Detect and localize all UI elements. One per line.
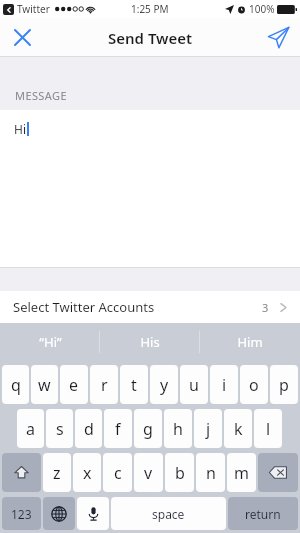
staticText: t <box>131 374 137 396</box>
staticText: r <box>101 374 108 396</box>
staticText: p <box>279 374 289 396</box>
button[interactable]: Dictate <box>77 497 109 530</box>
staticText: l <box>266 418 271 440</box>
staticText: Twitter <box>17 2 50 16</box>
button[interactable]: j <box>194 409 222 448</box>
staticText: f <box>115 418 121 440</box>
staticText: z <box>53 462 61 484</box>
button[interactable]: b <box>165 453 194 492</box>
button[interactable]: Close <box>0 18 44 57</box>
button[interactable]: x <box>73 453 101 492</box>
staticText: b <box>175 462 185 484</box>
button[interactable]: Send <box>256 18 300 57</box>
staticText: space <box>152 506 185 522</box>
staticText: y <box>160 374 169 396</box>
button[interactable]: d <box>75 409 102 448</box>
button[interactable]: w <box>31 365 58 404</box>
staticText: i <box>222 374 227 396</box>
button[interactable]: v <box>134 453 163 492</box>
staticText: return <box>245 506 281 522</box>
button[interactable]: a <box>17 409 44 448</box>
staticText: His <box>140 333 160 351</box>
staticText: q <box>11 374 21 396</box>
staticText: o <box>249 374 259 396</box>
button[interactable]: z <box>43 453 71 492</box>
staticText: w <box>38 374 51 396</box>
staticText: Send Tweet <box>108 28 193 48</box>
button[interactable]: p <box>270 365 298 404</box>
staticText: MESSAGE <box>15 88 67 103</box>
button[interactable]: Hi <box>0 110 300 267</box>
button[interactable]: c <box>103 453 132 492</box>
button[interactable]: “Hi” <box>0 323 100 361</box>
staticText: k <box>234 418 243 440</box>
staticText: a <box>26 418 35 440</box>
staticText: x <box>83 462 92 484</box>
button[interactable]: q <box>2 365 29 404</box>
staticText: m <box>234 462 249 484</box>
button[interactable]: Backspace <box>258 453 298 492</box>
button[interactable]: h <box>164 409 192 448</box>
staticText: u <box>189 374 199 396</box>
button[interactable]: u <box>180 365 208 404</box>
button[interactable]: space <box>111 497 226 530</box>
button[interactable]: f <box>104 409 132 448</box>
button[interactable]: 123 <box>2 497 41 530</box>
button[interactable]: n <box>196 453 225 492</box>
staticText: h <box>173 418 183 440</box>
staticText: “Hi” <box>39 333 62 351</box>
button[interactable]: r <box>90 365 118 404</box>
staticText: v <box>144 462 153 484</box>
staticText: n <box>206 462 216 484</box>
button[interactable]: i <box>210 365 238 404</box>
staticText: 100% <box>249 2 275 16</box>
staticText: 123 <box>11 506 32 522</box>
staticText: e <box>69 374 79 396</box>
staticText: 1:25 PM <box>131 2 169 16</box>
button[interactable]: l <box>254 409 282 448</box>
staticText: g <box>143 418 153 440</box>
staticText: Hi <box>14 121 26 137</box>
button[interactable]: k <box>224 409 252 448</box>
staticText: 3 <box>262 300 269 315</box>
button[interactable]: y <box>150 365 178 404</box>
button[interactable]: e <box>60 365 88 404</box>
button[interactable]: g <box>134 409 162 448</box>
staticText: Select Twitter Accounts <box>13 298 155 316</box>
staticText: c <box>114 462 122 484</box>
staticText: j <box>206 418 211 440</box>
button[interactable]: return <box>228 497 298 530</box>
button[interactable]: His <box>100 323 200 361</box>
staticText: Him <box>237 333 263 351</box>
staticText: s <box>56 418 64 440</box>
button[interactable]: t <box>120 365 148 404</box>
button[interactable]: Him <box>200 323 300 361</box>
button[interactable]: Change keyboard <box>43 497 75 530</box>
staticText: d <box>84 418 94 440</box>
button[interactable]: Shift <box>2 453 41 492</box>
button[interactable]: Select Twitter Accounts <box>0 291 300 323</box>
button[interactable]: s <box>46 409 73 448</box>
button[interactable]: o <box>240 365 268 404</box>
button[interactable]: m <box>227 453 256 492</box>
